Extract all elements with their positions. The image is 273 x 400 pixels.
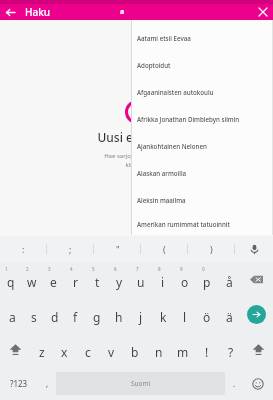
staticText: , — [46, 378, 49, 389]
button[interactable]: 4 — [64, 262, 86, 297]
button[interactable]: Aleksin maailma — [131, 186, 273, 213]
button[interactable]: 1 — [0, 262, 21, 297]
button[interactable]: l — [174, 297, 196, 332]
staticText: w — [27, 274, 37, 290]
button[interactable]: Back — [0, 4, 20, 20]
staticText: x — [61, 344, 68, 360]
staticText: " — [116, 243, 120, 255]
staticText: Haku — [25, 5, 51, 19]
button[interactable]: Alaskan armoilla — [131, 159, 273, 186]
staticText: 8 — [158, 266, 161, 272]
staticText: ( — [163, 243, 166, 255]
button[interactable]: å — [218, 262, 240, 297]
button[interactable]: f — [65, 297, 86, 332]
button[interactable]: . — [225, 367, 243, 400]
button[interactable]: a — [2, 297, 23, 332]
staticText: Afgaaninaisten autokoulu — [137, 88, 214, 96]
button[interactable]: Ajankohtainen Nelonen — [131, 132, 273, 159]
button[interactable]: , — [38, 367, 56, 400]
button[interactable]: ö — [196, 297, 218, 332]
button[interactable]: s — [23, 297, 44, 332]
staticText: : — [22, 243, 25, 255]
button[interactable]: Afgaaninaisten autokoulu — [131, 78, 273, 105]
staticText: a — [120, 7, 125, 17]
staticText: f — [73, 309, 78, 325]
button[interactable]: c — [76, 332, 99, 367]
button[interactable]: 3 — [42, 262, 64, 297]
button[interactable]: 5 — [86, 262, 108, 297]
staticText: h — [115, 309, 123, 325]
button[interactable]: j — [130, 297, 152, 332]
staticText: d — [51, 309, 59, 325]
button[interactable]: Voice input — [235, 236, 273, 262]
staticText: y — [116, 274, 123, 290]
staticText: Afrikka Jonathan Dimblebyn silmin — [137, 115, 240, 123]
staticText: Adoptoidut — [137, 61, 171, 69]
button[interactable]: d — [44, 297, 65, 332]
staticText: g — [93, 309, 101, 325]
staticText: b — [131, 344, 139, 360]
button[interactable]: ?123 — [0, 367, 38, 400]
staticText: Suomi — [131, 379, 151, 388]
staticText: 7 — [136, 266, 139, 272]
staticText: 2 — [26, 266, 29, 272]
button[interactable]: 9 — [174, 262, 196, 297]
staticText: n — [155, 344, 163, 360]
button[interactable]: ! — [195, 332, 219, 367]
button[interactable]: 0 — [196, 262, 218, 297]
staticText: q — [7, 274, 15, 290]
staticText: ö — [203, 309, 211, 325]
button[interactable]: k — [152, 297, 174, 332]
button[interactable]: Shift — [0, 332, 30, 367]
button[interactable]: Clear search — [253, 4, 273, 20]
staticText: Ajankohtainen Nelonen — [137, 142, 207, 150]
staticText: ; — [69, 243, 72, 255]
button[interactable]: Afrikka Jonathan Dimblebyn silmin — [131, 105, 273, 132]
button[interactable]: ? — [219, 332, 243, 367]
button[interactable]: 7 — [130, 262, 152, 297]
staticText: ä — [226, 309, 233, 325]
button[interactable]: x — [53, 332, 76, 367]
button[interactable]: Adoptoidut — [131, 51, 273, 78]
button[interactable]: v — [99, 332, 123, 367]
staticText: z — [39, 344, 45, 360]
staticText: r — [73, 274, 78, 290]
button[interactable]: : — [0, 236, 47, 262]
staticText: e — [50, 274, 57, 290]
button[interactable]: Aatami etsii Eevaa — [131, 24, 273, 51]
button[interactable]: m — [171, 332, 195, 367]
button[interactable]: Search — [240, 297, 273, 332]
staticText: Hae sarjoja, elokuvia ja klippejä — [0, 152, 273, 169]
staticText: 1 — [5, 266, 8, 272]
staticText: m — [177, 344, 189, 360]
button[interactable]: n — [147, 332, 171, 367]
button[interactable]: g — [86, 297, 108, 332]
staticText: u — [137, 274, 145, 290]
staticText: s — [31, 309, 37, 325]
button[interactable]: ) — [188, 236, 235, 262]
button[interactable]: Shift — [243, 332, 273, 367]
button[interactable]: Backspace — [240, 262, 273, 297]
staticText: a — [9, 309, 16, 325]
staticText: 6 — [114, 266, 117, 272]
button[interactable]: ä — [218, 297, 240, 332]
button[interactable]: ( — [141, 236, 188, 262]
button[interactable]: z — [30, 332, 53, 367]
staticText: Aleksin maailma — [137, 196, 186, 204]
staticText: 9 — [180, 266, 183, 272]
staticText: i — [161, 274, 165, 290]
staticText: å — [226, 274, 233, 290]
staticText: k — [160, 309, 167, 325]
button[interactable]: Emoji — [243, 367, 273, 400]
button[interactable]: Amerikan rumimmat tatuoinnit — [131, 213, 273, 235]
button[interactable]: h — [108, 297, 130, 332]
staticText: ?123 — [10, 378, 28, 389]
staticText: . — [233, 378, 236, 389]
button[interactable]: 8 — [152, 262, 174, 297]
button[interactable]: 6 — [108, 262, 130, 297]
button[interactable]: " — [94, 236, 141, 262]
button[interactable]: 2 — [21, 262, 42, 297]
button[interactable]: Suomi — [56, 372, 225, 395]
button[interactable]: ; — [47, 236, 94, 262]
button[interactable]: b — [123, 332, 147, 367]
